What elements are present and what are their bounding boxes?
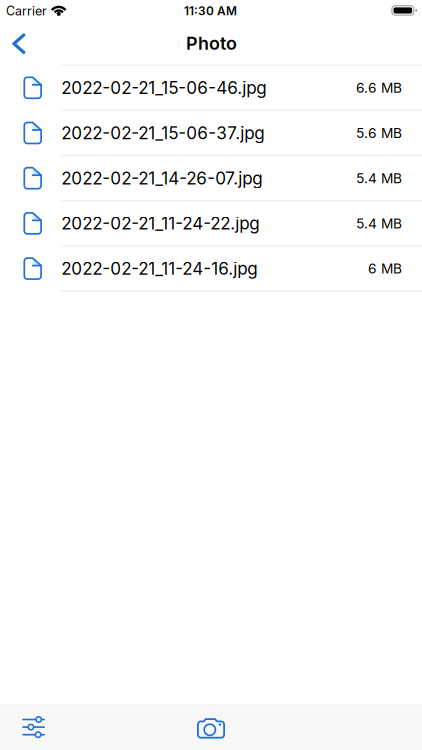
staticText: 2022-02-21_14-26-07.jpg — [61, 168, 262, 188]
staticText: 6.6 MB — [356, 79, 402, 96]
button[interactable]: Filter — [12, 710, 55, 744]
staticText: 5.4 MB — [356, 215, 402, 232]
staticText: 2022-02-21_15-06-37.jpg — [61, 123, 264, 143]
staticText: 5.4 MB — [356, 170, 402, 186]
button[interactable]: 2022-02-21_15-06-46.jpg — [0, 65, 422, 110]
staticText: 5.6 MB — [356, 125, 402, 141]
staticText: Photo — [186, 32, 237, 54]
button[interactable]: 2022-02-21_15-06-37.jpg — [0, 110, 422, 156]
staticText: Carrier — [6, 3, 47, 18]
button[interactable]: 2022-02-21_14-26-07.jpg — [0, 156, 422, 201]
staticText: 2022-02-21_11-24-16.jpg — [61, 258, 257, 279]
button[interactable]: 2022-02-21_11-24-22.jpg — [0, 201, 422, 246]
staticText: 2022-02-21_11-24-22.jpg — [61, 213, 259, 234]
button[interactable]: Camera — [187, 711, 235, 747]
button[interactable]: Back — [12, 33, 25, 54]
staticText: 11:30 AM — [184, 4, 237, 18]
staticText: 2022-02-21_15-06-46.jpg — [61, 77, 266, 98]
button[interactable]: 2022-02-21_11-24-16.jpg — [0, 246, 422, 291]
staticText: 6 MB — [368, 260, 402, 277]
